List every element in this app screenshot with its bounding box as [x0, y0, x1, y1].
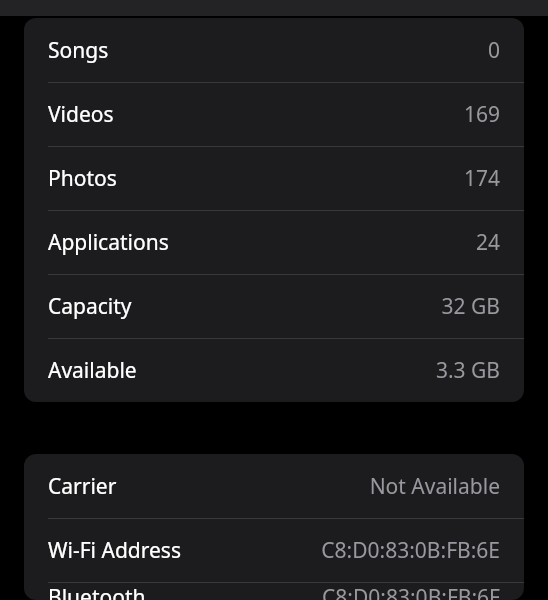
staticText: Videos	[48, 100, 114, 129]
button[interactable]: Carrier	[24, 454, 524, 518]
staticText: C8:D0:83:0B:FB:6F	[322, 583, 500, 600]
button[interactable]: Capacity	[24, 275, 524, 338]
staticText: Carrier	[48, 472, 117, 501]
staticText: 24	[475, 228, 500, 257]
staticText: Photos	[48, 164, 117, 193]
staticText: Wi-Fi Address	[48, 536, 181, 565]
staticText: Applications	[48, 228, 169, 257]
button[interactable]: Bluetooth	[24, 583, 524, 600]
button[interactable]: Wi-Fi Address	[24, 519, 524, 582]
button[interactable]: Songs	[24, 18, 524, 82]
button[interactable]: Photos	[24, 147, 524, 210]
staticText: C8:D0:83:0B:FB:6E	[321, 536, 500, 565]
staticText: Capacity	[48, 292, 132, 321]
staticText: 169	[463, 100, 500, 129]
button[interactable]: Applications	[24, 211, 524, 274]
staticText: Not Available	[369, 472, 500, 501]
staticText: Songs	[48, 36, 109, 65]
button[interactable]: Videos	[24, 83, 524, 146]
staticText: 0	[487, 36, 500, 65]
staticText: Bluetooth	[48, 583, 146, 600]
staticText: 32 GB	[441, 292, 500, 321]
staticText: 3.3 GB	[435, 356, 500, 385]
button[interactable]: Available	[24, 339, 524, 402]
staticText: 174	[463, 164, 500, 193]
staticText: Available	[48, 356, 137, 385]
